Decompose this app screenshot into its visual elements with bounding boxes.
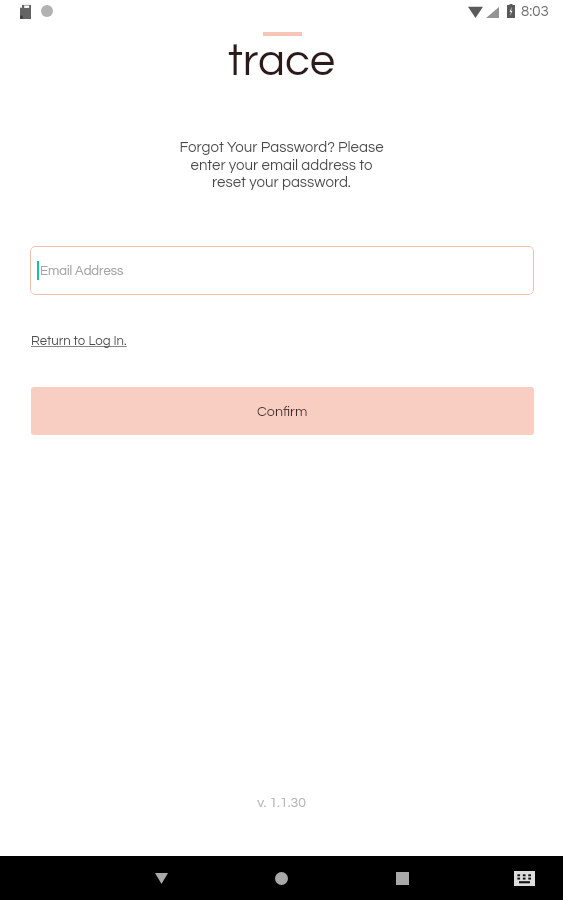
button[interactable]: Switch keyboard xyxy=(494,863,554,893)
staticText: trace xyxy=(228,38,336,85)
button[interactable]: Confirm xyxy=(31,387,534,435)
staticText: Confirm xyxy=(257,404,308,419)
staticText: 8:03 xyxy=(521,4,549,19)
staticText: Email Address xyxy=(40,264,124,277)
staticText: Forgot Your Password? Please enter your … xyxy=(0,140,563,190)
button[interactable]: Back xyxy=(131,863,192,893)
staticText: Return to Log In. xyxy=(31,334,127,348)
button[interactable]: Return to Log In. xyxy=(25,328,133,354)
button[interactable]: Home xyxy=(251,863,312,893)
staticText: v. 1.1.30 xyxy=(0,796,563,810)
button[interactable]: Recent apps xyxy=(372,863,433,893)
button[interactable]: Email Address input xyxy=(30,246,534,295)
